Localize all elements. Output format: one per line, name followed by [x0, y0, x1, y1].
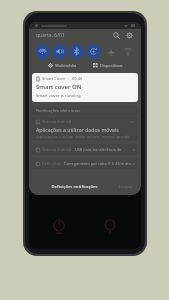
button[interactable]: Settings [124, 30, 135, 41]
button[interactable]: Quick setting toggle [120, 44, 135, 59]
button[interactable]: Multimédia [45, 62, 80, 69]
button[interactable]: Smart Cover [32, 73, 138, 102]
button[interactable]: Quick setting toggle [35, 44, 50, 59]
staticText: Definições notificações [51, 184, 98, 190]
button[interactable]: Sistema Android [32, 117, 138, 141]
staticText: Multimédia [55, 63, 77, 68]
staticText: Limpar [119, 184, 134, 190]
staticText: Notificações silenciosas [36, 108, 81, 113]
staticText: · [68, 76, 70, 81]
button[interactable]: Dispositivos [90, 62, 126, 69]
button[interactable]: Search [111, 30, 122, 41]
staticText: 00:46 [72, 76, 83, 81]
staticText: Sistema Android [42, 119, 72, 124]
other: App icon [51, 218, 67, 234]
other: App icon [102, 218, 118, 234]
staticText: Definições [42, 161, 61, 166]
staticText: Dispositivos [100, 63, 123, 68]
staticText: Smart cover is running [36, 93, 81, 99]
staticText: Aplicações a utilizar dados móveis [36, 126, 119, 133]
button[interactable]: Limpar [116, 182, 137, 192]
staticText: Smart Cover [42, 76, 66, 81]
staticText: Sistema Android [42, 147, 72, 152]
button[interactable]: Quick setting toggle [69, 44, 84, 59]
staticText: USB para transferência de ficheiros [75, 147, 134, 152]
button[interactable]: Quick setting toggle [52, 44, 67, 59]
button[interactable]: Quick setting toggle [103, 44, 118, 59]
staticText: Carregamento por cabo (1 h 46 m ate… [64, 161, 134, 166]
staticText: Smart cover ON [36, 83, 82, 91]
staticText: quarta, 6/01 [36, 32, 65, 39]
staticText: 2 aplicações a utilizar dados móveis, me… [36, 134, 134, 139]
button[interactable]: Definições [32, 158, 138, 169]
button[interactable]: Sistema Android [32, 144, 138, 155]
button[interactable]: Quick setting toggle [86, 44, 101, 59]
button[interactable]: Definições notificações [47, 182, 102, 192]
